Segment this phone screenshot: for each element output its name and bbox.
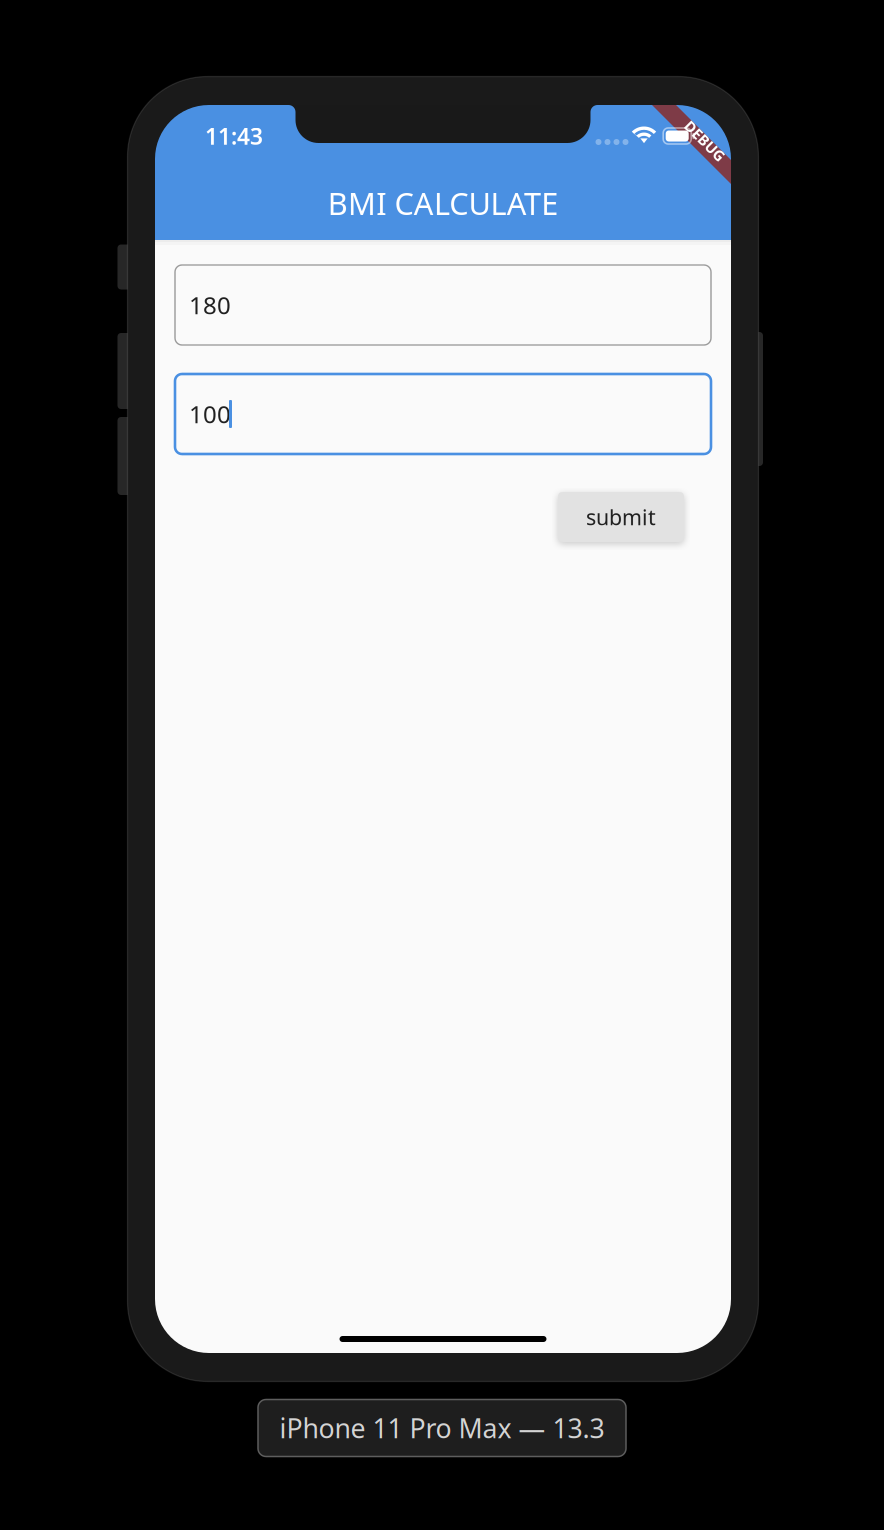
staticText: 180 [189,289,231,321]
staticText: 11:43 [205,121,263,151]
button[interactable]: Weight [175,374,711,454]
button[interactable]: iPhone 11 Pro Max — 13.3 [258,1399,626,1456]
button[interactable]: Height [175,265,711,345]
staticText: 100 [189,398,231,430]
staticText: submit [586,503,656,531]
button[interactable]: submit [558,492,684,542]
staticText: DEBUG [679,131,730,151]
staticText: BMI CALCULATE [328,183,558,223]
staticText: iPhone 11 Pro Max — 13.3 [279,1410,604,1446]
